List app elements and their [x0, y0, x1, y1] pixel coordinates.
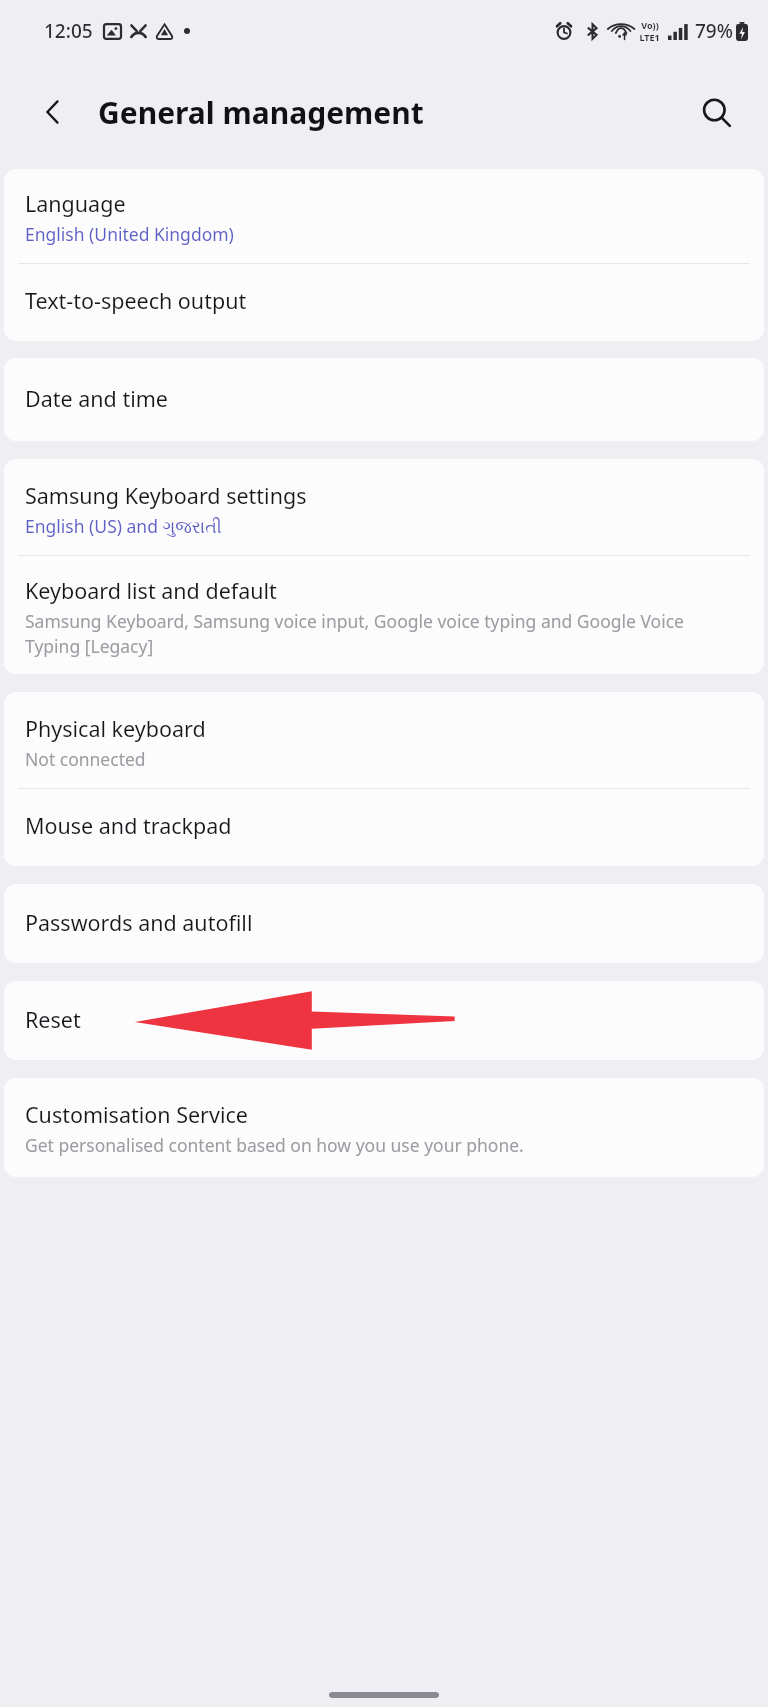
- button[interactable]: Date and time: [4, 358, 764, 441]
- button[interactable]: Reset: [4, 981, 764, 1060]
- staticText: Vo)): [641, 19, 659, 31]
- staticText: LTE1: [639, 31, 660, 43]
- staticText: Physical keyboard: [25, 714, 206, 743]
- staticText: Passwords and autofill: [25, 908, 253, 937]
- staticText: English (US) and ગુજરાતી: [25, 514, 222, 538]
- staticText: Samsung Keyboard, Samsung voice input, G…: [25, 609, 742, 658]
- staticText: Text-to-speech output: [25, 286, 247, 315]
- staticText: General management: [98, 92, 424, 133]
- staticText: Not connected: [25, 747, 146, 771]
- staticText: Samsung Keyboard settings: [25, 481, 307, 510]
- button[interactable]: Customisation Service: [4, 1078, 764, 1177]
- staticText: Date and time: [25, 384, 168, 413]
- button[interactable]: Mouse and trackpad: [4, 789, 764, 866]
- staticText: 79%: [695, 18, 733, 44]
- staticText: Get personalised content based on how yo…: [25, 1133, 524, 1157]
- staticText: Keyboard list and default: [25, 576, 277, 605]
- staticText: Reset: [25, 1005, 81, 1034]
- button[interactable]: Search: [688, 84, 744, 140]
- button[interactable]: Passwords and autofill: [4, 884, 764, 963]
- staticText: Language: [25, 189, 126, 218]
- staticText: Customisation Service: [25, 1100, 248, 1129]
- button[interactable]: Physical keyboard: [4, 692, 764, 788]
- button[interactable]: Samsung Keyboard settings: [4, 459, 764, 555]
- button[interactable]: Back: [26, 85, 80, 139]
- staticText: English (United Kingdom): [25, 222, 234, 246]
- staticText: 12:05: [44, 18, 93, 44]
- button[interactable]: Keyboard list and default: [4, 556, 764, 674]
- button[interactable]: Language: [4, 169, 764, 263]
- staticText: Mouse and trackpad: [25, 811, 232, 840]
- button[interactable]: Text-to-speech output: [4, 264, 764, 341]
